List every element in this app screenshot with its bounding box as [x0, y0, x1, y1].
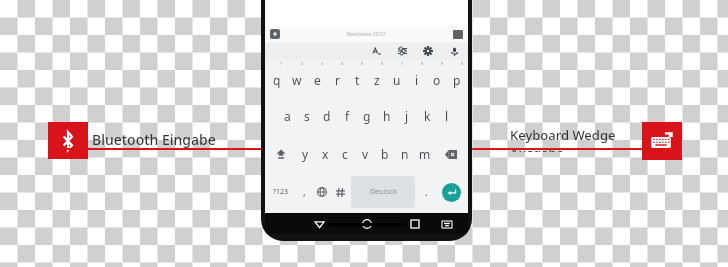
staticText: x — [322, 146, 329, 162]
staticText: i — [415, 72, 419, 88]
button[interactable]: Switch keyboard — [440, 217, 454, 231]
staticText: n — [401, 146, 409, 162]
button[interactable]: 2 — [287, 60, 307, 97]
staticText: u — [393, 72, 401, 88]
button[interactable]: h — [377, 97, 397, 135]
staticText: s — [304, 108, 310, 124]
staticText: g — [363, 108, 371, 124]
button[interactable]: 3 — [307, 60, 327, 97]
button[interactable]: Recent apps — [407, 216, 423, 232]
staticText: 6 — [381, 61, 384, 66]
staticText: 9 — [441, 61, 444, 66]
staticText: Bearbeitet 09:57 — [347, 31, 386, 38]
staticText: a — [284, 108, 291, 124]
button[interactable]: Deutsch — [351, 176, 415, 208]
staticText: Deutsch — [370, 187, 397, 197]
button[interactable]: 1 — [266, 60, 287, 97]
button[interactable]: y — [295, 135, 315, 173]
staticText: p — [453, 72, 461, 88]
button[interactable]: 9 — [427, 60, 447, 97]
staticText: h — [383, 108, 391, 124]
staticText: o — [433, 72, 441, 88]
staticText: d — [323, 108, 331, 124]
button[interactable]: Shift — [266, 135, 295, 173]
button[interactable]: 5 — [347, 60, 367, 97]
button[interactable]: ?123 — [266, 173, 295, 211]
button[interactable]: , — [295, 173, 313, 211]
button[interactable]: b — [375, 135, 395, 173]
button[interactable]: Home — [359, 216, 375, 232]
staticText: 0 — [461, 61, 464, 66]
button[interactable]: s — [297, 97, 317, 135]
button[interactable]: c — [335, 135, 355, 173]
button[interactable]: 0 — [447, 60, 467, 97]
button[interactable]: Emoji — [331, 173, 349, 211]
staticText: q — [273, 72, 281, 88]
staticText: f — [345, 108, 350, 124]
button[interactable]: Keyboard options — [453, 30, 463, 39]
button[interactable]: Text style — [370, 45, 382, 57]
button[interactable]: 4 — [327, 60, 347, 97]
staticText: e — [314, 72, 321, 88]
button[interactable]: n — [395, 135, 415, 173]
staticText: 7 — [401, 61, 404, 66]
staticText: m — [419, 146, 431, 162]
button[interactable]: Settings list — [396, 45, 408, 57]
button[interactable]: g — [357, 97, 377, 135]
staticText: Keyboard Wedge Ausgabe — [510, 126, 640, 152]
button[interactable]: 7 — [387, 60, 407, 97]
staticText: . — [425, 185, 428, 199]
staticText: , — [303, 185, 306, 199]
button[interactable]: Keyboard Wedge Ausgabe — [510, 126, 640, 152]
button[interactable]: Bluetooth — [48, 122, 88, 159]
staticText: b — [381, 146, 389, 162]
button[interactable]: Change language — [313, 173, 331, 211]
button[interactable]: Add — [270, 29, 280, 39]
staticText: w — [292, 72, 302, 88]
staticText: l — [445, 108, 449, 124]
button[interactable]: 8 — [407, 60, 427, 97]
staticText: k — [424, 108, 431, 124]
button[interactable]: Enter — [442, 183, 461, 202]
staticText: v — [362, 146, 369, 162]
button[interactable]: . — [417, 173, 435, 211]
button[interactable]: Bluetooth Eingabe — [92, 126, 242, 152]
button[interactable]: v — [355, 135, 375, 173]
staticText: c — [342, 146, 348, 162]
button[interactable]: Settings — [422, 45, 434, 57]
staticText: j — [405, 108, 409, 124]
button[interactable]: l — [437, 97, 457, 135]
button[interactable]: 6 — [367, 60, 387, 97]
staticText: 4 — [341, 61, 344, 66]
button[interactable]: a — [277, 97, 297, 135]
staticText: 5 — [361, 61, 364, 66]
button[interactable]: m — [415, 135, 435, 173]
staticText: Bluetooth Eingabe — [92, 130, 216, 149]
button[interactable]: x — [315, 135, 335, 173]
button[interactable]: j — [397, 97, 417, 135]
button[interactable]: k — [417, 97, 437, 135]
staticText: r — [335, 72, 340, 88]
button[interactable]: Backspace — [435, 135, 467, 173]
staticText: 1 — [280, 61, 283, 66]
button[interactable]: d — [317, 97, 337, 135]
staticText: 3 — [321, 61, 324, 66]
staticText: 2 — [301, 61, 304, 66]
staticText: z — [374, 72, 380, 88]
button[interactable]: Keyboard Wedge — [642, 122, 682, 160]
staticText: 8 — [421, 61, 424, 66]
staticText: t — [355, 72, 360, 88]
staticText: y — [302, 146, 309, 162]
button[interactable]: Back — [311, 216, 327, 232]
button[interactable]: Voice input — [448, 45, 460, 57]
button[interactable]: f — [337, 97, 357, 135]
staticText: ?123 — [273, 187, 289, 197]
